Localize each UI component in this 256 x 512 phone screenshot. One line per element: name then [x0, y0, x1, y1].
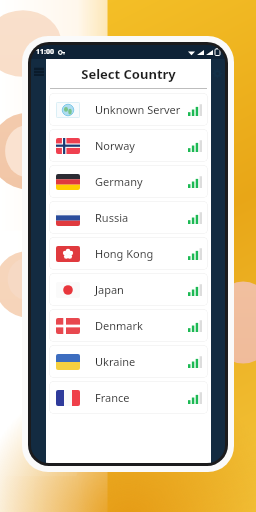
button[interactable]: Settings: [210, 66, 224, 80]
staticText: Ukraine: [95, 354, 136, 369]
staticText: 11:00: [36, 47, 54, 57]
staticText: Select Country: [46, 65, 211, 83]
button[interactable]: Unknown Server: [49, 93, 208, 126]
button[interactable]: Russia: [49, 201, 208, 234]
button[interactable]: France: [49, 381, 208, 414]
staticText: Unknown Server: [95, 102, 181, 117]
staticText: Norway: [95, 138, 135, 153]
button[interactable]: Norway: [49, 129, 208, 162]
staticText: Germany: [95, 174, 143, 189]
staticText: Denmark: [95, 318, 143, 333]
button[interactable]: Ukraine: [49, 345, 208, 378]
staticText: Japan: [95, 282, 124, 297]
staticText: Russia: [95, 210, 129, 225]
staticText: Hong Kong: [95, 246, 154, 261]
staticText: France: [95, 390, 130, 405]
button[interactable]: Germany: [49, 165, 208, 198]
button[interactable]: Hong Kong: [49, 237, 208, 270]
button[interactable]: Denmark: [49, 309, 208, 342]
button[interactable]: Menu: [32, 65, 46, 79]
button[interactable]: Japan: [49, 273, 208, 306]
